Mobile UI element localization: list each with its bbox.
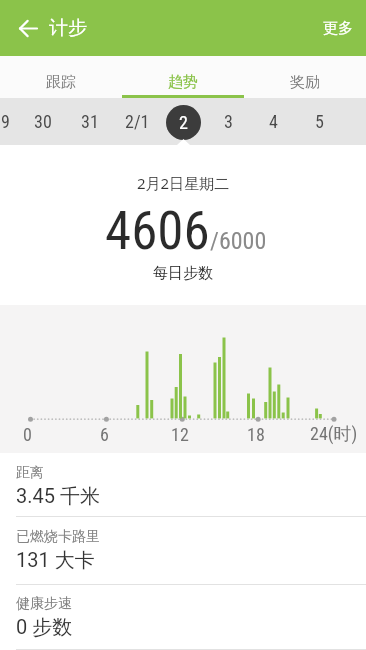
button[interactable]: 健康步速 [0,584,366,650]
staticText: 跟踪 [46,73,76,92]
staticText: 3.45 千米 [16,484,100,509]
button[interactable]: 31 [67,98,113,145]
button[interactable]: 9 [0,98,28,145]
staticText: 30 [34,111,52,132]
staticText: 奖励 [290,73,320,92]
staticText: 4606 [105,200,210,262]
button[interactable]: 更多 [310,0,366,56]
staticText: 9 [1,111,10,132]
button[interactable]: 奖励 [244,56,366,98]
button[interactable]: 已燃烧卡路里 [0,517,366,585]
button[interactable]: 4 [250,98,296,145]
staticText: 18 [247,424,265,445]
staticText: 距离 [16,464,44,482]
staticText: 131 大卡 [16,548,95,573]
staticText: 2 [179,112,188,133]
button[interactable]: 2 [166,105,201,140]
staticText: 0 步数 [16,615,73,640]
button[interactable]: 2/1 [114,98,160,145]
staticText: 6 [100,424,109,445]
button[interactable]: 3 [205,98,251,145]
staticText: 每日步数 [153,264,213,283]
staticText: 4 [269,111,278,132]
staticText: 2/1 [125,111,150,132]
staticText: 5 [315,111,324,132]
staticText: 趋势 [168,73,198,92]
staticText: 12 [171,424,189,445]
button[interactable]: 5 [296,98,342,145]
button[interactable] [0,0,56,56]
button[interactable]: 30 [20,98,66,145]
staticText: 31 [81,111,99,132]
staticText: 计步 [49,16,87,40]
staticText: 已燃烧卡路里 [16,528,100,546]
button[interactable]: 趋势 [122,56,244,98]
staticText: /6000 [210,227,267,255]
button[interactable]: 跟踪 [0,56,122,98]
staticText: 3 [224,111,233,132]
staticText: 更多 [323,19,353,38]
staticText: 2月2日星期二 [137,173,230,193]
staticText: 健康步速 [16,595,72,613]
staticText: 24(时) [310,423,358,446]
button[interactable]: 距离 [0,453,366,517]
staticText: 0 [23,424,32,445]
